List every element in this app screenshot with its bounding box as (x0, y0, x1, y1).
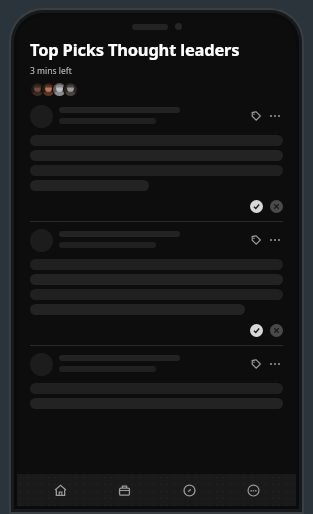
button[interactable]: Accept (250, 200, 263, 213)
button[interactable] (17, 259, 296, 315)
button[interactable]: Tag (17, 353, 296, 376)
staticText: Top Picks Thought leaders (30, 38, 240, 60)
button[interactable]: Tag (248, 232, 264, 248)
button[interactable]: Explore (167, 474, 211, 506)
button[interactable]: Tag (17, 105, 296, 128)
button[interactable]: Tag (17, 229, 296, 252)
button[interactable]: Accept (250, 324, 263, 337)
button[interactable]: Messages (231, 474, 275, 506)
button[interactable] (17, 383, 296, 409)
button[interactable]: More options (267, 232, 283, 248)
button[interactable]: More options (267, 356, 283, 372)
button[interactable]: Tag (248, 108, 264, 124)
button[interactable]: Tag (248, 356, 264, 372)
button[interactable]: More options (267, 108, 283, 124)
button[interactable]: Dismiss (270, 324, 283, 337)
button[interactable]: Dismiss (270, 200, 283, 213)
button[interactable]: Jobs (102, 474, 146, 506)
staticText: 3 mins left (30, 65, 72, 77)
button[interactable]: Home (38, 474, 82, 506)
button[interactable] (17, 135, 296, 191)
